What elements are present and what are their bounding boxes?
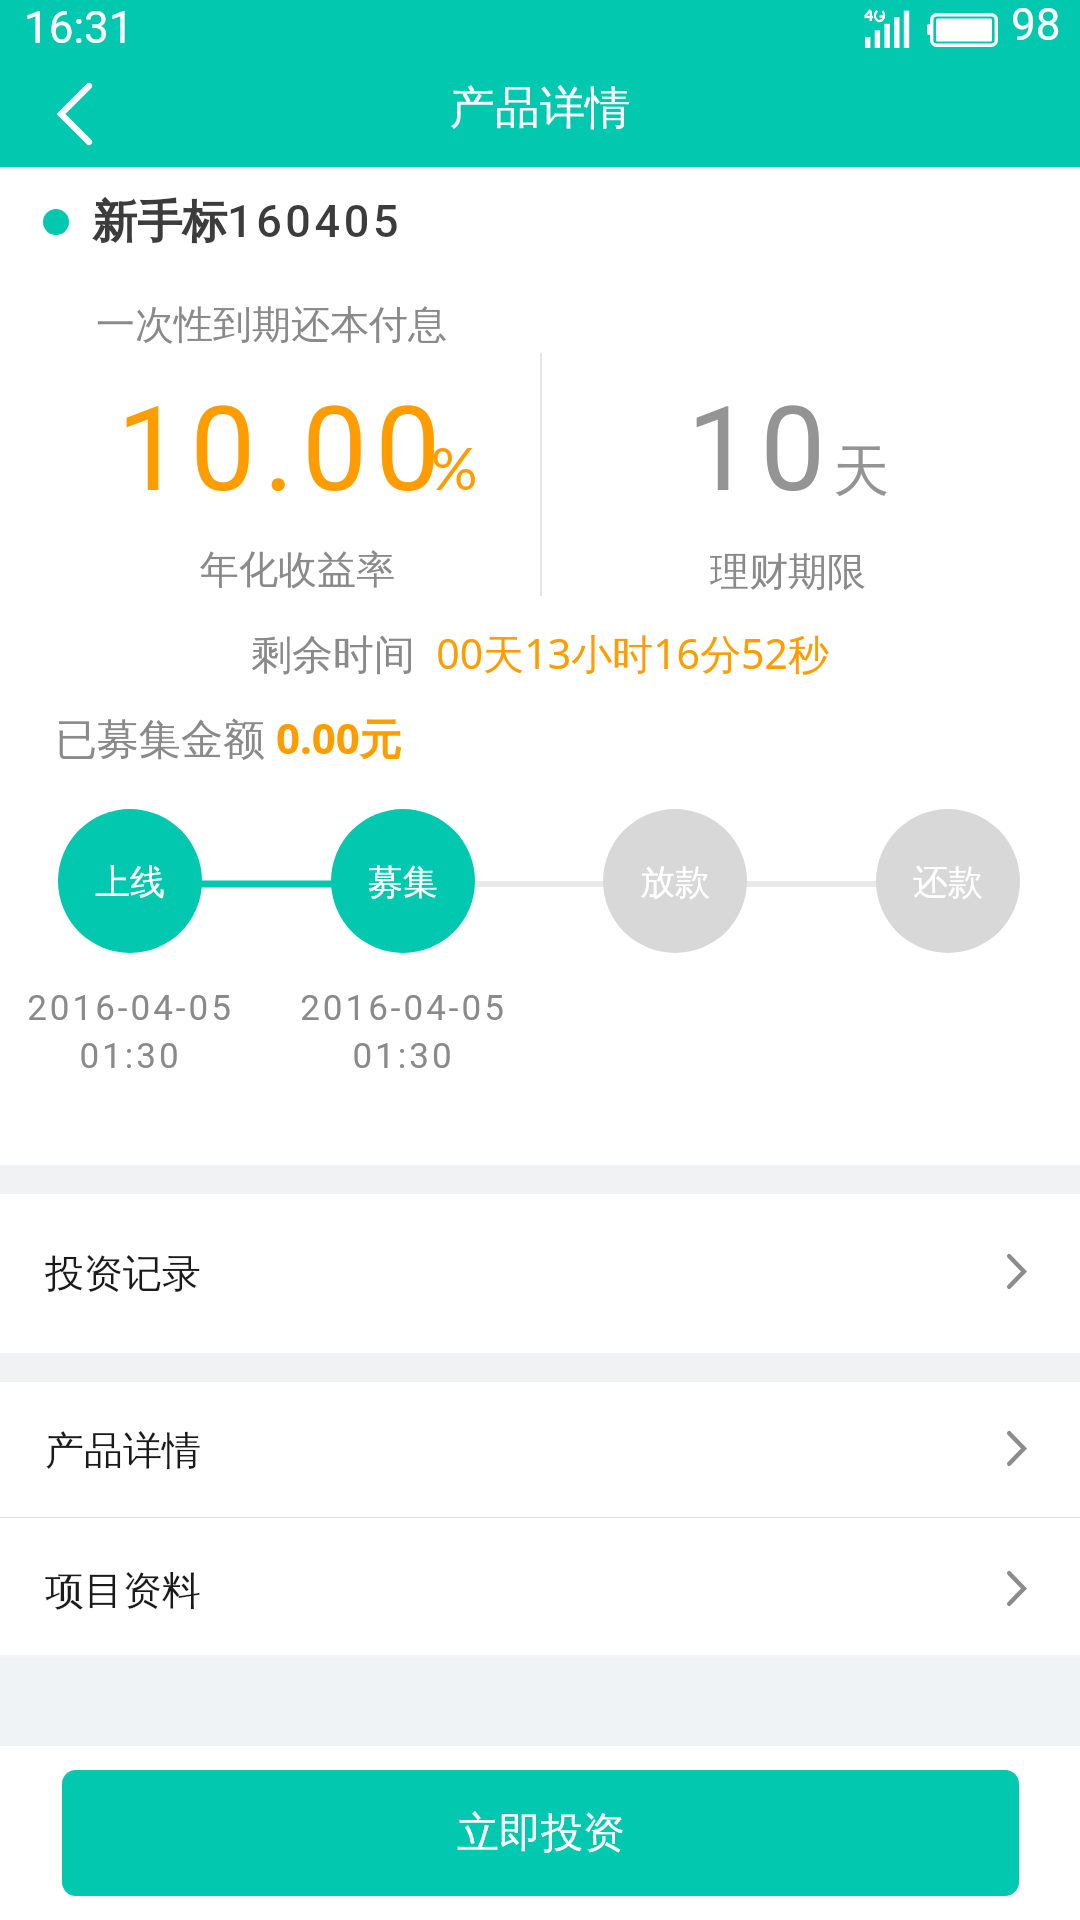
button[interactable]: Back	[20, 60, 130, 170]
staticText: %	[431, 433, 478, 503]
staticText: 10天	[687, 382, 890, 518]
staticText: 98	[1011, 0, 1061, 51]
staticText: 年化收益率	[200, 545, 395, 594]
staticText: 投资记录	[45, 1249, 201, 1298]
button[interactable]: 募集	[303, 809, 503, 954]
staticText: 理财期限	[710, 547, 866, 596]
staticText: 产品详情	[450, 80, 630, 137]
staticText: 产品详情	[45, 1426, 201, 1475]
button[interactable]: 放款	[575, 809, 775, 954]
staticText: 10.00	[117, 382, 449, 518]
button[interactable]: 立即投资	[62, 1770, 1019, 1896]
staticText: 已募集金额 0.00元	[55, 709, 402, 766]
button[interactable]: 还款	[848, 809, 1048, 954]
button[interactable]: 投资记录	[0, 1194, 1080, 1353]
staticText: 放款	[640, 860, 710, 904]
other: Signal and battery	[860, 0, 1005, 60]
staticText: 16:31	[24, 2, 134, 54]
button[interactable]: 上线	[30, 809, 230, 954]
button[interactable]: 产品详情	[0, 1382, 1080, 1517]
button[interactable]: 项目资料	[0, 1518, 1080, 1655]
staticText: 一次性到期还本付息	[96, 300, 447, 349]
staticText: 新手标160405	[92, 194, 403, 251]
staticText: 募集	[368, 860, 438, 904]
staticText: 立即投资	[457, 1807, 625, 1860]
staticText: 还款	[913, 860, 983, 904]
staticText: 项目资料	[45, 1566, 201, 1615]
staticText: 上线	[95, 860, 165, 904]
staticText: 2016-04-05 01:30	[300, 988, 507, 1077]
staticText: 2016-04-05 01:30	[27, 988, 234, 1077]
staticText: 剩余时间 00天13小时16分52秒	[251, 625, 829, 681]
